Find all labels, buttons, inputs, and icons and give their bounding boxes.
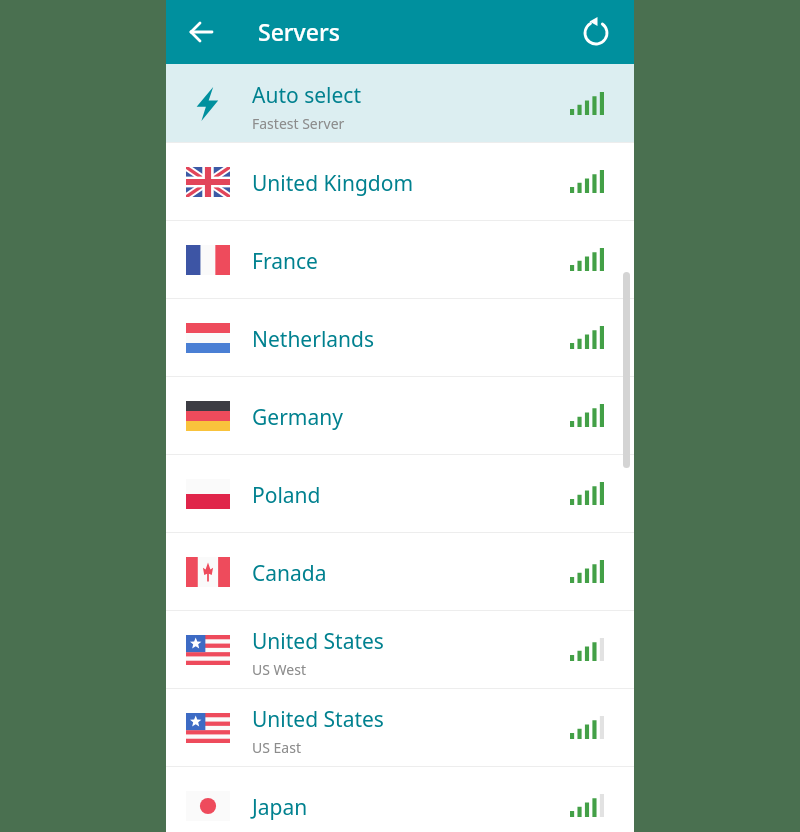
button[interactable]: Japan [166, 767, 634, 832]
staticText: Auto select [252, 81, 361, 110]
button[interactable]: Germany [166, 377, 634, 454]
button[interactable]: Auto select [166, 64, 634, 142]
staticText: Poland [252, 481, 321, 510]
staticText: Fastest Server [252, 114, 345, 133]
button[interactable]: United Kingdom [166, 143, 634, 220]
staticText: Servers [258, 16, 340, 47]
button[interactable]: Poland [166, 455, 634, 532]
staticText: Netherlands [252, 325, 375, 354]
button[interactable]: United States [166, 689, 634, 766]
button[interactable]: Canada [166, 533, 634, 610]
staticText: Canada [252, 559, 327, 588]
staticText: US West [252, 660, 306, 679]
button[interactable]: Refresh [574, 10, 618, 54]
button[interactable]: United States [166, 611, 634, 688]
button[interactable]: Back [180, 10, 224, 54]
staticText: United States [252, 627, 384, 656]
button[interactable]: France [166, 221, 634, 298]
staticText: France [252, 247, 318, 276]
staticText: US East [252, 738, 301, 757]
staticText: Germany [252, 403, 343, 432]
button[interactable]: Netherlands [166, 299, 634, 376]
staticText: Japan [252, 793, 308, 822]
staticText: United States [252, 705, 384, 734]
staticText: United Kingdom [252, 169, 414, 198]
